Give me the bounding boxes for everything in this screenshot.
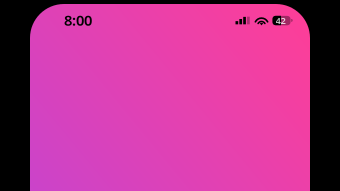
staticText: 8:00	[64, 10, 92, 30]
staticText: 42	[276, 14, 286, 27]
